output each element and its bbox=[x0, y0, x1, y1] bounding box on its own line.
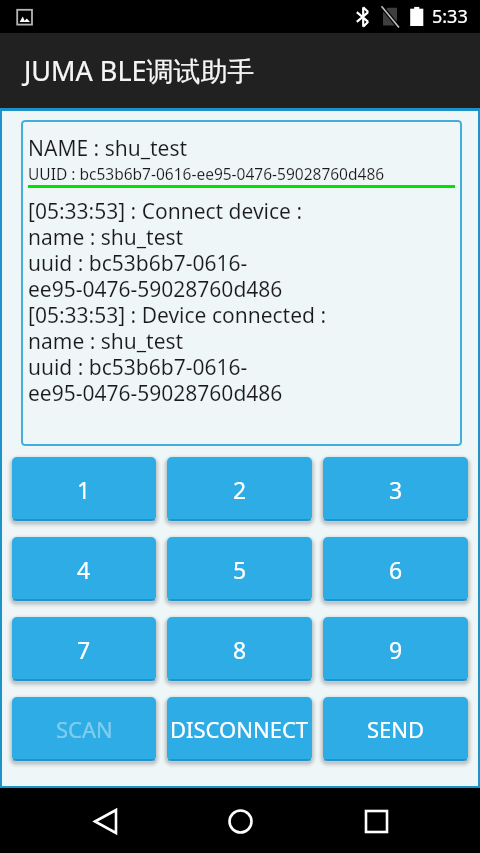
button[interactable]: 4 bbox=[12, 537, 156, 601]
button[interactable]: Recents bbox=[345, 790, 407, 852]
button[interactable]: 3 bbox=[323, 457, 468, 521]
button[interactable]: 9 bbox=[323, 617, 468, 681]
button[interactable]: 5 bbox=[167, 537, 312, 601]
button[interactable]: 8 bbox=[167, 617, 312, 681]
button[interactable]: Back bbox=[74, 790, 136, 852]
staticText: 4 bbox=[77, 554, 91, 585]
staticText: UUID : bc53b6b7-0616-ee95-0476-59028760d… bbox=[28, 163, 385, 184]
staticText: 1 bbox=[77, 474, 91, 505]
button[interactable]: SEND bbox=[323, 697, 468, 761]
staticText: JUMA BLE调试助手 bbox=[24, 52, 255, 89]
staticText: NAME : shu_test bbox=[28, 134, 188, 163]
staticText: 6 bbox=[389, 554, 403, 585]
staticText: 2 bbox=[233, 474, 247, 505]
staticText: 8 bbox=[233, 634, 247, 665]
staticText: 3 bbox=[389, 474, 403, 505]
button[interactable]: 7 bbox=[12, 617, 156, 681]
button[interactable]: DISCONNECT bbox=[167, 697, 312, 761]
button[interactable]: SCAN bbox=[12, 697, 156, 761]
staticText: 7 bbox=[77, 634, 91, 665]
staticText: 9 bbox=[389, 634, 403, 665]
staticText: [05:33:53] : Connect device : name : shu… bbox=[28, 197, 327, 407]
staticText: SCAN bbox=[56, 714, 113, 744]
button[interactable]: 2 bbox=[167, 457, 312, 521]
button[interactable]: Home bbox=[209, 790, 271, 852]
staticText: SEND bbox=[367, 714, 425, 744]
staticText: 5 bbox=[233, 554, 247, 585]
button[interactable]: 1 bbox=[12, 457, 156, 521]
button[interactable]: 6 bbox=[323, 537, 468, 601]
staticText: DISCONNECT bbox=[170, 714, 309, 744]
staticText: 5:33 bbox=[432, 4, 468, 29]
